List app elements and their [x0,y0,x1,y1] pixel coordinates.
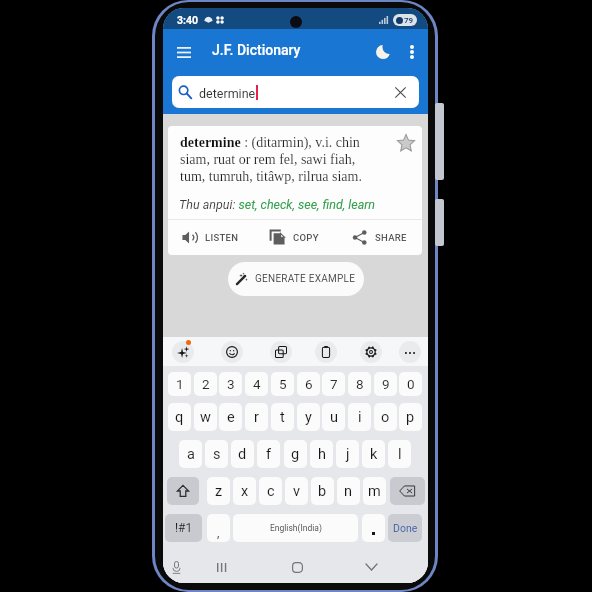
button[interactable]: 9 [374,372,397,396]
staticText: i [358,409,362,426]
button[interactable]: u [322,403,345,431]
button[interactable]: Hide keyboard [361,557,381,577]
staticText: Done [393,522,418,534]
button[interactable]: Backspace [390,477,425,505]
button[interactable]: y [297,403,320,431]
button[interactable]: a [179,440,202,468]
staticText: v [293,483,301,500]
staticText: s [213,446,221,463]
staticText: !#1 [175,521,193,535]
staticText: b [318,483,327,500]
button[interactable]: Home [287,557,307,577]
staticText: q [175,409,184,426]
staticText: k [370,446,378,463]
staticText: l [398,446,402,463]
button[interactable]: z [207,477,230,505]
staticText: 8 [356,376,364,392]
button[interactable]: m [363,477,386,505]
button[interactable]: o [374,403,397,431]
staticText: y [305,409,312,426]
button[interactable]: GENERATE EXAMPLE [228,262,364,296]
button[interactable]: 0 [399,372,422,396]
button[interactable]: Emoji [221,341,243,363]
staticText: COPY [293,232,319,243]
button[interactable]: Translate [270,341,292,363]
button[interactable]: AI suggestions [172,341,194,363]
button[interactable]: Add to favourites [396,133,416,153]
button[interactable]: k [362,440,385,468]
button[interactable]: Toggle dark mode [368,37,398,67]
button[interactable]: , [207,514,230,542]
staticText: 2 [202,376,210,392]
button[interactable]: t [271,403,294,431]
button[interactable]: l [388,440,411,468]
button[interactable]: d [231,440,254,468]
staticText: g [291,446,300,463]
button[interactable]: i [348,403,371,431]
button[interactable]: !#1 [165,514,202,542]
button[interactable]: q [168,403,191,431]
button[interactable]: 3 [219,372,242,396]
button[interactable]: Voice input [166,557,186,577]
staticText: h [318,446,326,463]
button[interactable] [362,514,385,542]
button[interactable]: Clipboard [315,341,337,363]
staticText: 79 [404,16,414,25]
button[interactable]: g [284,440,307,468]
button[interactable]: 4 [245,372,268,396]
button[interactable]: COPY [252,220,337,255]
button[interactable]: More options [397,37,427,67]
staticText: c [267,483,275,500]
staticText: a [187,446,195,463]
staticText: determine : (ditarmin), v.i. chin siam, … [180,135,362,185]
button[interactable]: Keyboard settings [360,341,382,363]
button[interactable]: 8 [348,372,371,396]
staticText: j [346,446,350,463]
staticText: 7 [330,376,338,392]
staticText: 4 [253,376,261,392]
staticText: e [227,409,235,426]
staticText: t [280,409,285,426]
button[interactable]: e [219,403,242,431]
staticText: d [238,446,247,463]
staticText: 1 [176,376,184,392]
button[interactable]: 7 [322,372,345,396]
staticText: J.F. Dictionary [212,42,301,58]
button[interactable]: LISTEN [168,220,252,255]
staticText: n [344,483,353,500]
button[interactable]: Done [388,514,422,542]
button[interactable]: English(India) [233,514,358,542]
button[interactable]: s [205,440,228,468]
button[interactable]: More [399,341,421,363]
button[interactable]: b [311,477,334,505]
button[interactable]: 5 [271,372,294,396]
button[interactable]: 1 [168,372,191,396]
button[interactable]: Open navigation menu [169,37,199,67]
button[interactable]: Clear search [391,83,409,101]
button[interactable]: r [245,403,268,431]
button[interactable]: determine [172,76,419,108]
staticText: 3:40 [177,14,199,26]
staticText: Thu anpui: set, check, see, find, learn [179,197,376,212]
staticText: determine [199,86,256,101]
staticText: u [330,409,338,426]
staticText: 3 [227,376,235,392]
button[interactable]: Shift [167,477,199,505]
button[interactable]: j [336,440,359,468]
button[interactable]: 2 [194,372,217,396]
button[interactable]: p [399,403,422,431]
button[interactable]: SHARE [337,220,422,255]
button[interactable]: f [257,440,280,468]
button[interactable]: Recent apps [212,557,232,577]
button[interactable]: w [194,403,217,431]
staticText: GENERATE EXAMPLE [255,273,356,285]
button[interactable]: h [310,440,333,468]
button[interactable]: c [259,477,282,505]
button[interactable]: v [285,477,308,505]
staticText: r [254,409,259,426]
button[interactable]: n [337,477,360,505]
staticText: w [200,409,211,426]
button[interactable]: 6 [297,372,320,396]
button[interactable]: x [233,477,256,505]
staticText: 6 [305,376,313,392]
